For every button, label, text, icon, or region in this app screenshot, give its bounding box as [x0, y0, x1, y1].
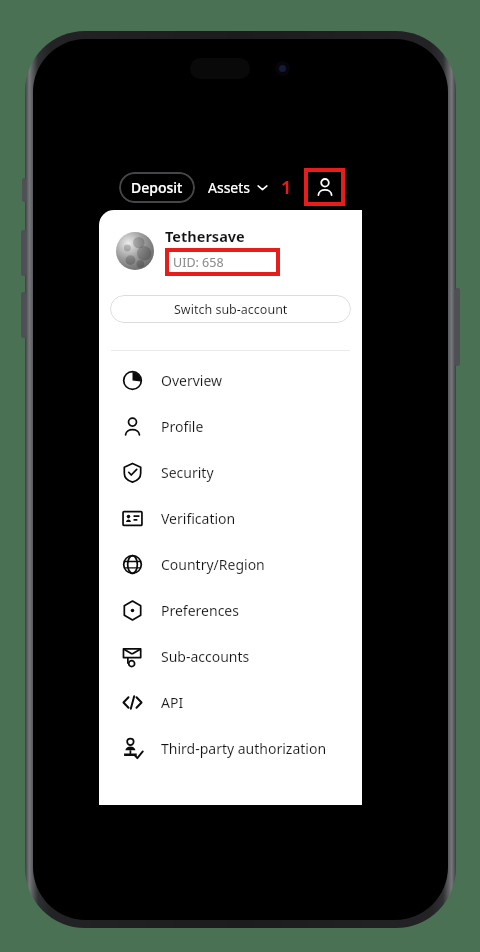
button[interactable]: Verification [99, 495, 362, 541]
staticText: Sub-accounts [161, 647, 250, 666]
button[interactable]: Sub-accounts [99, 633, 362, 679]
button[interactable]: Profile [99, 403, 362, 449]
staticText: Country/Region [161, 555, 265, 574]
staticText: Assets [208, 178, 251, 197]
button[interactable]: Tethersave [116, 226, 352, 276]
button[interactable]: Overview [99, 357, 362, 403]
button[interactable]: Third-party authorization [99, 725, 362, 771]
button[interactable]: Security [99, 449, 362, 495]
button[interactable]: API [99, 679, 362, 725]
staticText: API [161, 693, 184, 712]
staticText: Switch sub-account [174, 301, 288, 318]
staticText: Security [161, 463, 214, 482]
staticText: Preferences [161, 601, 239, 620]
button[interactable]: Preferences [99, 587, 362, 633]
staticText: Tethersave [165, 226, 245, 246]
button[interactable]: Deposit [119, 172, 195, 203]
staticText: UID: 658 [173, 254, 224, 271]
staticText: Deposit [131, 178, 183, 197]
button[interactable]: Switch sub-account [110, 295, 351, 323]
staticText: 1 [281, 175, 292, 200]
staticText: Third-party authorization [161, 739, 327, 758]
staticText: Profile [161, 417, 204, 436]
button[interactable]: Country/Region [99, 541, 362, 587]
button[interactable]: Account [304, 168, 345, 206]
staticText: Verification [161, 509, 236, 528]
button[interactable]: Assets [208, 173, 268, 202]
staticText: Overview [161, 371, 223, 390]
